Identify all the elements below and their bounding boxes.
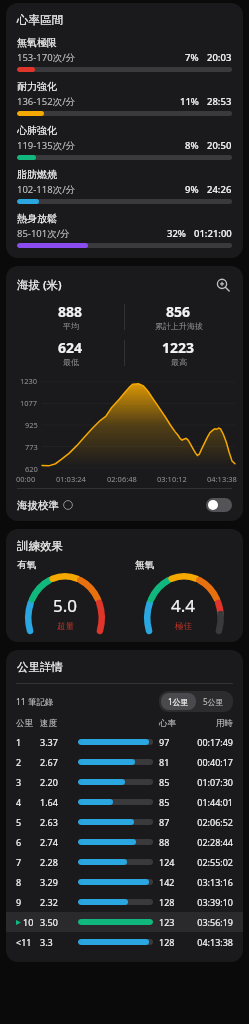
- staticText: 01:21:00: [194, 227, 232, 240]
- staticText: 3.3: [40, 936, 78, 948]
- staticText: 海拔校準: [17, 499, 59, 512]
- staticText: 00:00: [16, 474, 36, 484]
- button[interactable]: 有氧: [6, 559, 124, 632]
- staticText: 87: [159, 816, 189, 828]
- staticText: 3.37: [40, 736, 78, 748]
- staticText: 11 筆記錄: [16, 696, 54, 708]
- button[interactable]: 7: [6, 852, 243, 872]
- staticText: 10: [23, 916, 34, 928]
- staticText: 28:53: [207, 95, 232, 108]
- button[interactable]: 熱身放鬆: [6, 212, 243, 248]
- staticText: 心率: [159, 718, 189, 729]
- staticText: 1223: [162, 338, 195, 357]
- staticText: 925: [25, 420, 38, 430]
- staticText: 02:06:48: [107, 474, 137, 484]
- staticText: 128: [159, 936, 189, 948]
- button[interactable]: 海拔校準: [6, 489, 243, 521]
- staticText: 1.64: [40, 796, 78, 808]
- staticText: 01:07:30: [189, 776, 233, 788]
- staticText: 7: [16, 856, 22, 868]
- staticText: 2.74: [40, 836, 78, 848]
- button[interactable]: 6: [6, 832, 243, 852]
- staticText: 03:56:19: [189, 916, 233, 928]
- button[interactable]: 4: [6, 792, 243, 812]
- staticText: 136-152次/分: [17, 95, 76, 108]
- button[interactable]: 5: [6, 812, 243, 832]
- staticText: 1公里: [168, 696, 189, 707]
- staticText: 888: [58, 302, 83, 321]
- staticText: 無氧: [135, 559, 154, 571]
- staticText: 有氧: [17, 559, 36, 571]
- staticText: 2: [16, 756, 22, 768]
- button[interactable]: <11: [6, 932, 243, 952]
- staticText: 124: [159, 856, 189, 868]
- button[interactable]: 9: [6, 892, 243, 912]
- staticText: 03:13:16: [189, 876, 233, 888]
- staticText: 02:55:02: [189, 856, 233, 868]
- staticText: 平均: [63, 321, 79, 331]
- staticText: 128: [159, 896, 189, 908]
- staticText: 00:17:49: [189, 736, 233, 748]
- staticText: 脂肪燃燒: [17, 168, 57, 181]
- staticText: 1: [16, 736, 22, 748]
- staticText: 8: [16, 876, 22, 888]
- staticText: 119-135次/分: [17, 139, 76, 152]
- staticText: 8%: [185, 139, 199, 152]
- staticText: 最低: [63, 357, 79, 367]
- staticText: 102-118次/分: [17, 183, 76, 196]
- staticText: 02:28:44: [189, 836, 233, 848]
- staticText: 97: [159, 736, 189, 748]
- staticText: 1077: [20, 398, 38, 408]
- staticText: 32%: [167, 227, 186, 240]
- staticText: 624: [58, 338, 83, 357]
- staticText: 3.50: [40, 916, 78, 928]
- staticText: 5.0: [53, 594, 78, 617]
- staticText: 03:10:12: [157, 474, 187, 484]
- button[interactable]: 2: [6, 752, 243, 772]
- staticText: 20:50: [207, 139, 232, 152]
- staticText: 620: [25, 464, 38, 474]
- button[interactable]: Altitude calibration toggle, off: [206, 498, 232, 512]
- staticText: 耐力強化: [17, 80, 57, 93]
- staticText: <11: [16, 936, 32, 948]
- staticText: 01:44:01: [189, 796, 233, 808]
- button[interactable]: 8: [6, 872, 243, 892]
- staticText: 最高: [171, 357, 187, 367]
- staticText: 24:26: [207, 183, 232, 196]
- staticText: 心率區間: [17, 13, 63, 27]
- button[interactable]: 3: [6, 772, 243, 792]
- staticText: 81: [159, 756, 189, 768]
- staticText: 速度: [40, 718, 78, 729]
- button[interactable]: 1: [6, 732, 243, 752]
- staticText: 03:39:10: [189, 896, 233, 908]
- staticText: 訓練效果: [17, 539, 63, 553]
- staticText: 公里詳情: [17, 660, 63, 674]
- staticText: 142: [159, 876, 189, 888]
- staticText: 7%: [185, 51, 199, 64]
- staticText: 9%: [185, 183, 199, 196]
- button[interactable]: 1公里: [161, 693, 196, 710]
- button[interactable]: 5公里: [196, 693, 231, 710]
- staticText: 4: [16, 796, 22, 808]
- button[interactable]: 無氧極限: [6, 36, 243, 72]
- button[interactable]: 脂肪燃燒: [6, 168, 243, 204]
- staticText: 3.29: [40, 876, 78, 888]
- staticText: 04:13:38: [189, 936, 233, 948]
- button[interactable]: 耐力強化: [6, 80, 243, 116]
- button[interactable]: Zoom in chart: [214, 276, 232, 294]
- button[interactable]: 無氧: [124, 559, 243, 632]
- staticText: 773: [25, 442, 38, 452]
- button[interactable]: 心肺強化: [6, 124, 243, 160]
- staticText: 熱身放鬆: [17, 212, 57, 225]
- staticText: 00:40:17: [189, 756, 233, 768]
- staticText: 856: [166, 302, 191, 321]
- staticText: 公里: [16, 718, 40, 729]
- button[interactable]: 10: [6, 912, 243, 932]
- staticText: 極佳: [175, 621, 192, 632]
- staticText: 02:06:52: [189, 816, 233, 828]
- staticText: 11%: [180, 95, 199, 108]
- staticText: 153-170次/分: [17, 51, 76, 64]
- staticText: 2.20: [40, 776, 78, 788]
- staticText: 20:03: [207, 51, 232, 64]
- staticText: 2.67: [40, 756, 78, 768]
